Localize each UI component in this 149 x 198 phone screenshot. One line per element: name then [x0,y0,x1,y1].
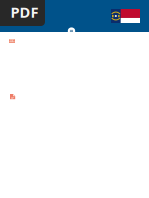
staticText: PDF [10,2,38,22]
button[interactable]: Site home [68,27,75,35]
button[interactable]: PDF [0,0,45,26]
